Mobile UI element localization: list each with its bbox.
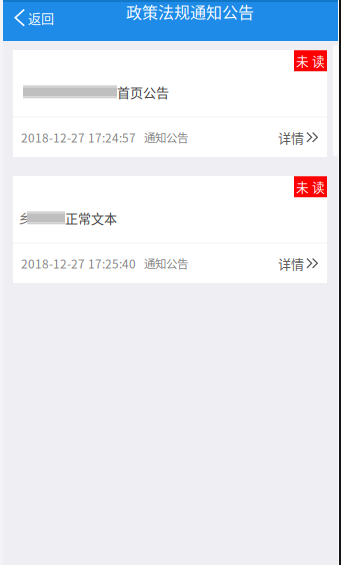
staticText: 未 读 <box>296 178 325 196</box>
staticText: 通知公告 <box>144 129 188 145</box>
button[interactable]: 乡 <box>13 176 327 283</box>
staticText: 政策法规通知公告 <box>126 0 254 23</box>
button[interactable]: 返回 <box>0 0 64 35</box>
staticText: 正常文本 <box>65 208 117 227</box>
staticText: 2018-12-27 17:24:57 <box>21 129 136 146</box>
staticText: 返回 <box>28 8 54 27</box>
staticText: 通知公告 <box>144 255 188 271</box>
staticText: 首页公告 <box>117 82 169 101</box>
staticText: 详情 <box>278 254 304 273</box>
staticText: 详情 <box>278 128 304 147</box>
button[interactable]: 首页公告 <box>13 50 327 157</box>
staticText: 未 读 <box>296 52 325 70</box>
staticText: 2018-12-27 17:25:40 <box>21 255 136 272</box>
staticText: 乡 <box>18 208 31 227</box>
